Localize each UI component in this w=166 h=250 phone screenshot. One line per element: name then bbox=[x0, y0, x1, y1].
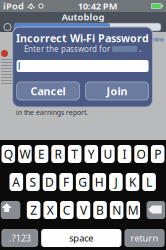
staticText: 3G and App Store sales will not be inclu… bbox=[16, 88, 103, 106]
button[interactable]: O bbox=[134, 145, 148, 163]
button[interactable]: S bbox=[26, 173, 40, 191]
button[interactable]: J bbox=[109, 173, 123, 191]
staticText: Buy MY 3G Phone online bbox=[107, 36, 164, 43]
button[interactable]: Join bbox=[86, 82, 149, 100]
staticText: Autoblog bbox=[61, 11, 104, 23]
button[interactable]: Q bbox=[1, 145, 15, 163]
button[interactable]: Delete bbox=[147, 201, 165, 219]
staticText: . bbox=[139, 44, 141, 54]
button[interactable]: T bbox=[68, 145, 81, 163]
staticText: P bbox=[154, 146, 161, 162]
staticText: N bbox=[112, 202, 121, 218]
button[interactable]: space bbox=[41, 229, 121, 247]
button[interactable]: F bbox=[59, 173, 73, 191]
button[interactable]: A bbox=[9, 173, 23, 191]
staticText: iPod bbox=[3, 0, 24, 12]
staticText: X bbox=[47, 202, 54, 218]
staticText: between April 1, 2008 and June bbox=[16, 49, 100, 67]
button[interactable]: D bbox=[43, 173, 56, 191]
button[interactable]: Cancel bbox=[17, 82, 80, 100]
staticText: Q bbox=[4, 146, 13, 162]
staticText: .?123 bbox=[9, 232, 31, 244]
button[interactable]: U bbox=[101, 145, 115, 163]
button[interactable]: return bbox=[124, 229, 165, 247]
staticText: Z bbox=[30, 202, 37, 218]
button[interactable]: H bbox=[92, 173, 106, 191]
staticText: L bbox=[146, 174, 152, 190]
staticText: Y bbox=[88, 146, 95, 162]
button[interactable]: V bbox=[77, 201, 90, 219]
staticText: Incorrect Wi-Fi Password bbox=[16, 31, 149, 45]
staticText: I bbox=[122, 146, 126, 162]
staticText: return bbox=[130, 232, 158, 244]
staticText: W bbox=[19, 146, 30, 162]
button[interactable]: Y bbox=[84, 145, 98, 163]
staticText: B bbox=[96, 202, 104, 218]
button[interactable]: E bbox=[35, 145, 48, 163]
staticText: D bbox=[45, 174, 54, 190]
staticText: Enter the password for bbox=[24, 44, 110, 54]
button[interactable]: .?123 bbox=[1, 229, 38, 247]
staticText: Join bbox=[107, 84, 128, 98]
staticText: M bbox=[128, 202, 139, 218]
staticText: S bbox=[29, 174, 36, 190]
button[interactable]: W bbox=[18, 145, 32, 163]
button[interactable]: N bbox=[110, 201, 123, 219]
button[interactable]: K bbox=[126, 173, 139, 191]
staticText: T bbox=[71, 146, 78, 162]
staticText: Cancel bbox=[31, 84, 66, 98]
staticText: H bbox=[95, 174, 104, 190]
staticText: J bbox=[114, 174, 117, 190]
staticText: U bbox=[103, 146, 112, 162]
staticText: A bbox=[12, 174, 20, 190]
button[interactable]: P bbox=[151, 145, 164, 163]
button[interactable]: Shift bbox=[1, 201, 20, 219]
staticText: F bbox=[63, 174, 69, 190]
button[interactable]: B bbox=[93, 201, 107, 219]
button[interactable]: R bbox=[51, 145, 65, 163]
button[interactable]: I bbox=[118, 145, 131, 163]
staticText: O bbox=[137, 146, 146, 162]
staticText: E bbox=[38, 146, 45, 162]
button[interactable]: G bbox=[76, 173, 89, 191]
staticText: 10:42 PM bbox=[78, 0, 118, 12]
button[interactable]: L bbox=[142, 173, 156, 191]
button[interactable]: Z bbox=[27, 201, 40, 219]
button[interactable]: C bbox=[60, 201, 74, 219]
staticText: K bbox=[129, 174, 136, 190]
staticText: quarter encompasses sales bbox=[16, 38, 102, 47]
staticText: in the earnings report. bbox=[16, 108, 88, 117]
staticText: V bbox=[80, 202, 87, 218]
button[interactable]: X bbox=[43, 201, 57, 219]
staticText: C bbox=[63, 202, 71, 218]
staticText: G bbox=[78, 174, 87, 190]
staticText: 30, 2008. As such, results from the iPho… bbox=[16, 69, 96, 86]
button[interactable]: M bbox=[126, 201, 140, 219]
staticText: space bbox=[69, 232, 93, 244]
staticText: R bbox=[55, 146, 62, 162]
